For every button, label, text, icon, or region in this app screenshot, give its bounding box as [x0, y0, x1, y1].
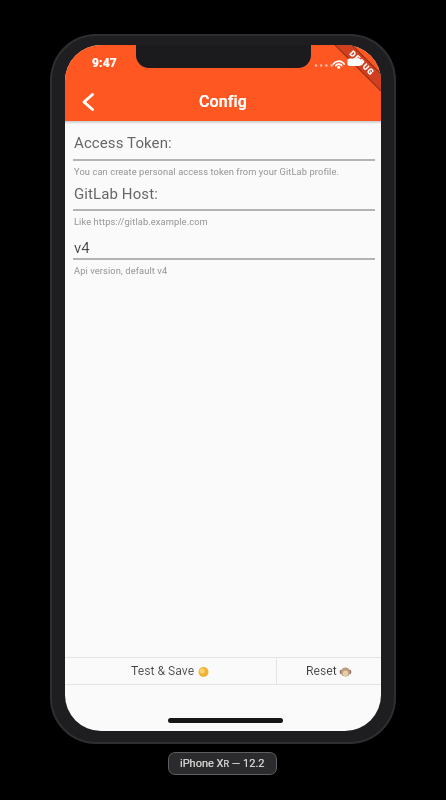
staticText: iPhone XR — 12.2 — [180, 757, 265, 770]
button[interactable] — [71, 85, 105, 119]
staticText: Like https://gitlab.example.com — [74, 216, 208, 227]
staticText: Access Token: — [74, 134, 172, 152]
staticText: v4 — [74, 239, 90, 257]
staticText: DEBUG — [347, 49, 376, 78]
staticText: Test & Save — [131, 664, 198, 678]
staticText: You can create personal access token fro… — [74, 166, 340, 177]
button[interactable]: Test & Save — [65, 658, 275, 684]
staticText: Api version, default v4 — [74, 265, 168, 276]
staticText: Reset — [306, 664, 340, 678]
button[interactable]: Reset — [276, 658, 381, 684]
staticText: Config — [199, 92, 247, 111]
staticText: 9:47 — [92, 56, 117, 70]
staticText: GitLab Host: — [74, 185, 158, 203]
